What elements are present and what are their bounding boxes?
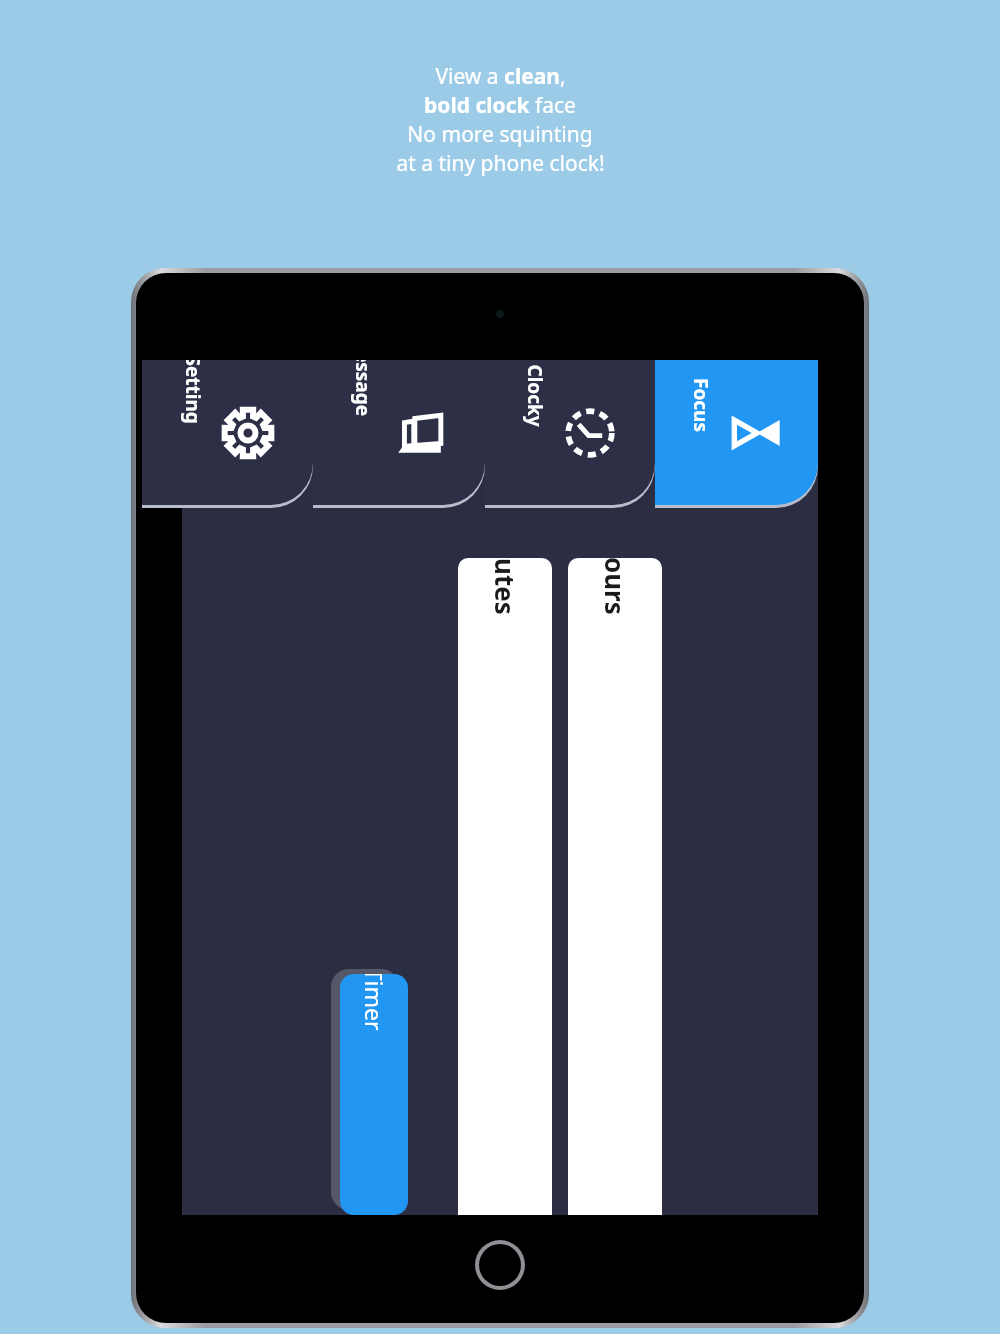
other: Settings — [222, 407, 274, 459]
other: Clocky — [564, 407, 616, 459]
staticText: at a tiny phone clock! — [396, 149, 605, 178]
staticText: Number of Minutes: 5 Minutes — [488, 580, 523, 931]
staticText: View a clean, — [435, 62, 566, 91]
staticText: Start Focus Timer — [359, 1000, 390, 1189]
staticText: Focus — [688, 406, 714, 460]
button[interactable]: Setting — [142, 360, 313, 505]
button[interactable]: Number of Hours: 0 Hours — [568, 558, 662, 1215]
button[interactable]: Focus — [655, 360, 818, 505]
button[interactable]: Number of Minutes: 5 Minutes — [458, 558, 552, 1215]
button[interactable]: Start Focus Timer — [340, 974, 408, 1215]
staticText: Clocky — [521, 400, 547, 463]
staticText: Message — [350, 391, 376, 475]
staticText: No more squinting — [407, 120, 593, 149]
button[interactable]: Message — [313, 360, 485, 505]
staticText: bold clock face — [424, 91, 576, 120]
staticText: Number of Hours: 0 Hours — [598, 580, 633, 881]
button[interactable]: Clocky — [485, 360, 655, 505]
other: Focus — [730, 406, 784, 460]
other: Message — [393, 407, 445, 459]
staticText: Setting — [179, 397, 205, 466]
